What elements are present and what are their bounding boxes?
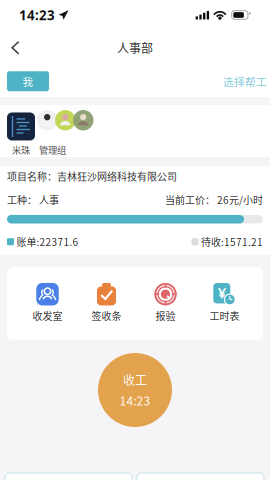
button[interactable]: 选择帮工 [223, 68, 267, 94]
staticText: 签收条 [91, 308, 121, 323]
staticText: 收工 [123, 371, 147, 388]
staticText: 我 [22, 73, 33, 89]
staticText: 账单:22371.6 [16, 234, 78, 249]
staticText: 待收:1571.21 [201, 234, 263, 249]
staticText: 工种： 人事 [7, 192, 59, 207]
button[interactable]: ¥ [195, 267, 254, 340]
button[interactable]: 我 [7, 71, 49, 91]
button[interactable]: 报验 [136, 267, 195, 340]
staticText: ¥ [218, 283, 226, 302]
staticText: 米珠 [12, 143, 30, 156]
staticText: 管理组 [39, 143, 66, 156]
button[interactable]: 收发室 [18, 267, 77, 340]
staticText: 14:23 [119, 391, 150, 409]
button[interactable]: Action 2 [137, 473, 264, 480]
staticText: 人事部 [117, 39, 153, 56]
button[interactable]: Back [0, 33, 34, 63]
staticText: 选择帮工 [223, 73, 267, 89]
button[interactable]: 签收条 [77, 267, 136, 340]
staticText: 项目名称：吉林狂沙网络科技有限公司 [7, 169, 177, 183]
staticText: 当前工价： 26元/小时 [165, 192, 263, 207]
button[interactable]: Action 1 [5, 473, 132, 480]
staticText: 收发室 [32, 308, 62, 323]
button[interactable]: 收工 [98, 353, 172, 427]
staticText: 工时表 [209, 308, 239, 323]
staticText: 14:23 [19, 6, 55, 24]
staticText: 报验 [155, 308, 175, 323]
